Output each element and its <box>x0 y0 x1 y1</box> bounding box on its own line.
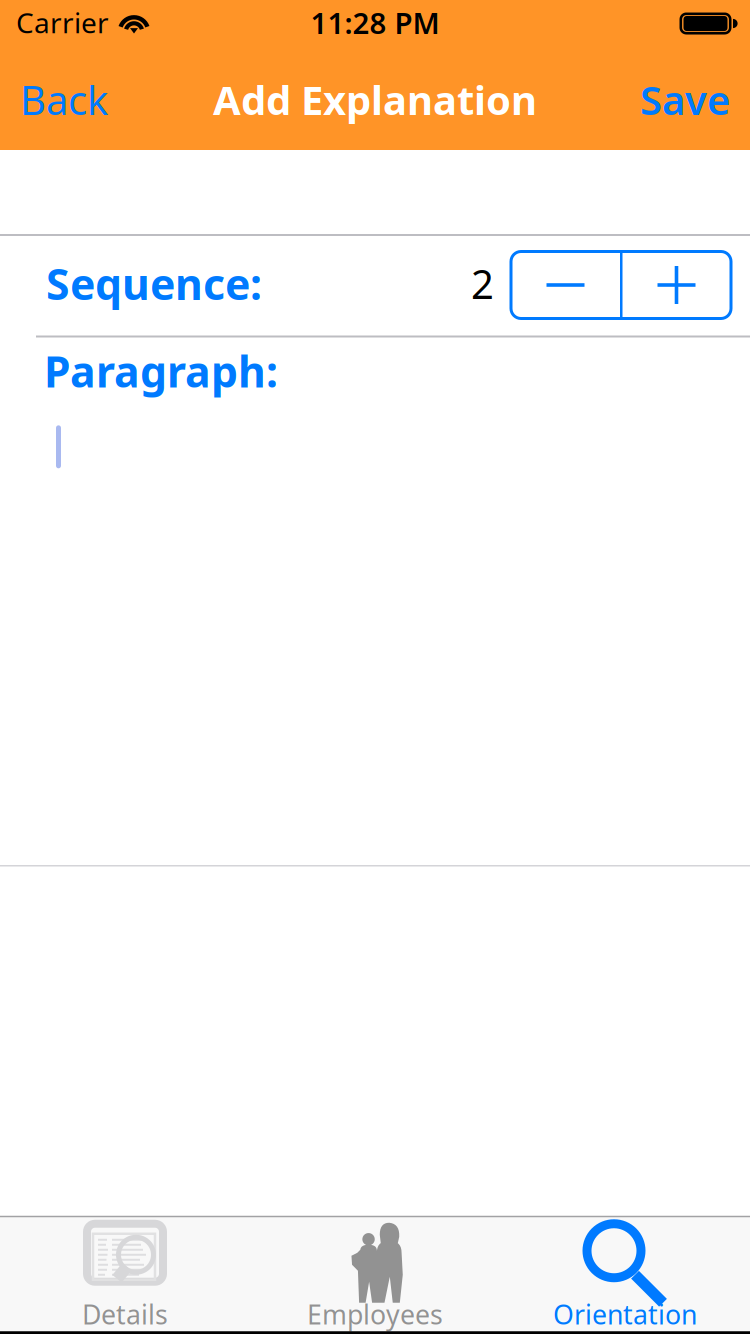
button[interactable]: Save <box>616 40 750 150</box>
button[interactable]: Decrease <box>511 251 620 318</box>
staticText: Back <box>20 73 108 126</box>
button[interactable]: Increase <box>622 251 731 318</box>
staticText: 11:28 PM <box>310 3 439 42</box>
button[interactable]: Details <box>0 1216 250 1333</box>
button[interactable]: Employees <box>250 1216 500 1333</box>
staticText: Sequence: <box>46 255 262 312</box>
staticText: Employees <box>307 1296 443 1332</box>
button[interactable]: Back <box>0 40 132 150</box>
staticText: Details <box>82 1296 168 1332</box>
staticText: Paragraph: <box>44 343 278 399</box>
staticText: Add Explanation <box>213 73 537 126</box>
staticText: 2 <box>471 257 494 310</box>
button[interactable]: Paragraph text <box>0 399 750 873</box>
staticText: Carrier <box>16 4 109 41</box>
staticText: Orientation <box>553 1296 697 1332</box>
button[interactable]: Orientation <box>500 1216 750 1333</box>
staticText: Save <box>640 73 730 126</box>
